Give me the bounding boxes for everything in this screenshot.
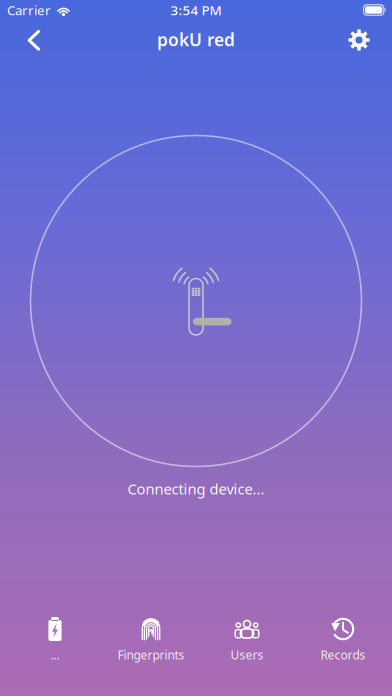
button[interactable]: Users (199, 608, 295, 696)
staticText: ... (50, 647, 59, 663)
staticText: Carrier (7, 1, 51, 19)
button[interactable]: Settings (337, 20, 381, 60)
staticText: pokU red (157, 28, 235, 51)
staticText: Fingerprints (117, 647, 184, 663)
button[interactable]: Fingerprints (103, 608, 199, 696)
button[interactable]: Records (295, 608, 391, 696)
staticText: Users (230, 647, 263, 663)
button[interactable]: ... (7, 608, 103, 696)
staticText: Records (320, 647, 365, 663)
staticText: Connecting device... (127, 479, 264, 498)
staticText: 3:54 PM (170, 1, 221, 19)
button[interactable]: Back (13, 20, 57, 60)
